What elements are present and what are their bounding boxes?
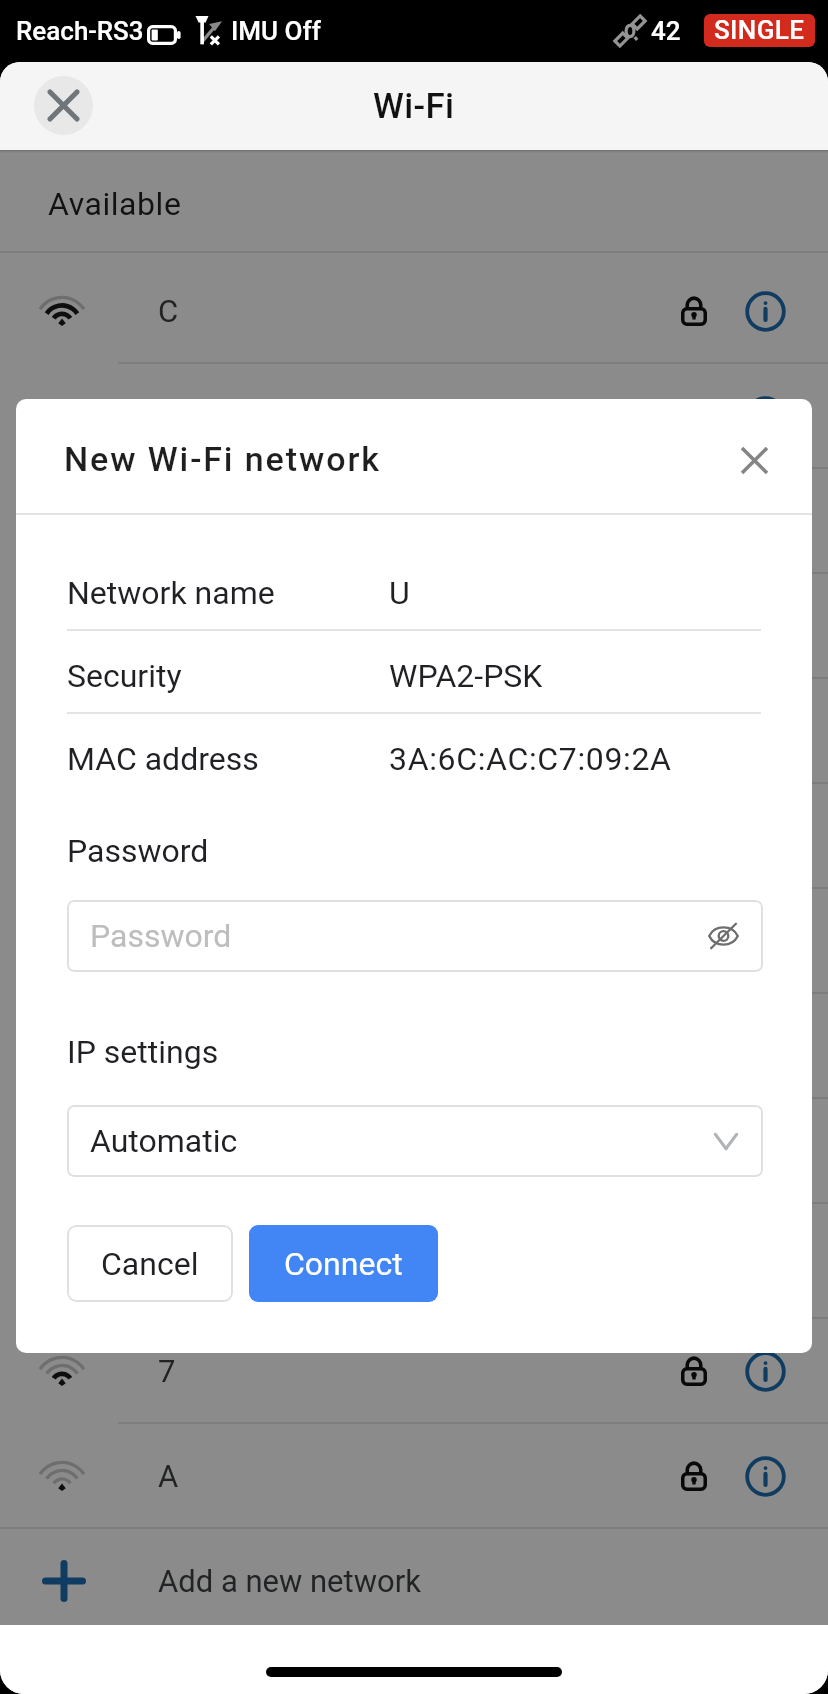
staticText: Reach-RS3: [16, 16, 144, 46]
button[interactable]: Cancel: [67, 1225, 233, 1302]
staticText: WPA2-PSK: [389, 657, 543, 695]
staticText: Automatic: [90, 1122, 238, 1160]
staticText: N: [158, 1248, 181, 1284]
button[interactable]: L: [0, 888, 828, 993]
staticText: L: [158, 923, 175, 959]
button[interactable]: N: [0, 1213, 828, 1318]
staticText: SINGLE: [714, 15, 805, 45]
staticText: Q: [158, 1133, 180, 1169]
staticText: 7: [158, 1353, 176, 1389]
button[interactable]: Q: [0, 1098, 828, 1203]
staticText: C: [158, 293, 179, 329]
button[interactable]: Network info: [743, 919, 787, 963]
staticText: S: [158, 713, 177, 749]
button[interactable]: 7: [0, 1318, 828, 1423]
button[interactable]: C: [0, 258, 828, 363]
staticText: IP settings: [67, 1033, 219, 1071]
staticText: R: [158, 398, 178, 434]
staticText: K: [158, 503, 178, 539]
button[interactable]: Password: [67, 900, 763, 972]
staticText: Wi-Fi: [373, 86, 455, 127]
staticText: New Wi-Fi network: [64, 439, 381, 479]
staticText: Add a new network: [158, 1563, 421, 1599]
button[interactable]: SINGLE: [704, 14, 815, 47]
staticText: MAC address: [67, 740, 259, 778]
staticText: Network name: [67, 574, 275, 612]
staticText: 3A:6C:AC:C7:09:2A: [389, 740, 672, 778]
staticText: A: [158, 1458, 179, 1494]
staticText: Available: [48, 185, 182, 223]
button[interactable]: M: [0, 573, 828, 678]
button[interactable]: A: [0, 1423, 828, 1528]
button[interactable]: S: [0, 678, 828, 783]
button[interactable]: Network info: [743, 1454, 787, 1498]
button[interactable]: Network info: [743, 709, 787, 753]
button[interactable]: Network info: [743, 1129, 787, 1173]
button[interactable]: Automatic: [67, 1105, 763, 1177]
button[interactable]: Close dialog: [726, 432, 782, 488]
staticText: Password: [90, 917, 232, 955]
staticText: IMU Off: [231, 16, 321, 46]
button[interactable]: P: [0, 993, 828, 1098]
button[interactable]: K: [0, 468, 828, 573]
staticText: Connect: [284, 1245, 403, 1283]
button[interactable]: Network info: [743, 604, 787, 648]
button[interactable]: Network info: [743, 499, 787, 543]
button[interactable]: Network info: [743, 394, 787, 438]
button[interactable]: Add a new network: [0, 1532, 828, 1630]
staticText: U: [389, 574, 410, 612]
button[interactable]: R: [0, 363, 828, 468]
button[interactable]: T: [0, 783, 828, 888]
staticText: P: [158, 1028, 178, 1064]
staticText: T: [158, 818, 177, 854]
staticText: M: [158, 608, 186, 644]
staticText: Password: [67, 832, 209, 870]
staticText: 42: [651, 16, 681, 46]
staticText: Cancel: [101, 1245, 199, 1283]
button[interactable]: Connect: [249, 1225, 438, 1302]
button[interactable]: Close: [34, 76, 93, 135]
button[interactable]: Show password: [702, 915, 744, 957]
button[interactable]: Network info: [743, 289, 787, 333]
staticText: Security: [67, 657, 182, 695]
button[interactable]: Network info: [743, 1349, 787, 1393]
